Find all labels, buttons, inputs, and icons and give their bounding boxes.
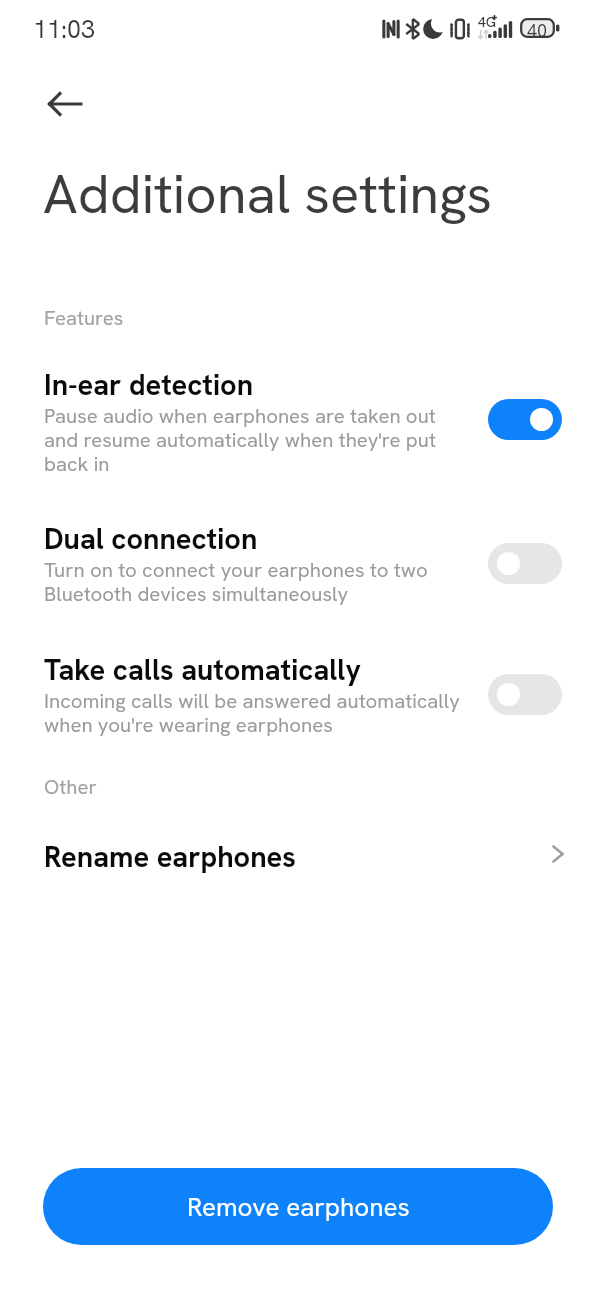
- staticText: In-ear detection: [44, 366, 254, 404]
- staticText: 40: [527, 19, 548, 42]
- button[interactable]: Switch off: [488, 543, 562, 584]
- staticText: 4G: [478, 13, 497, 31]
- staticText: 11:03: [33, 13, 96, 46]
- staticText: Pause audio when earphones are taken out…: [44, 403, 464, 477]
- button[interactable]: Switch off: [488, 674, 562, 715]
- button[interactable]: Switch on: [488, 399, 562, 440]
- button[interactable]: Rename earphones: [0, 838, 596, 878]
- staticText: Additional settings: [43, 158, 493, 229]
- button[interactable]: In-ear detection: [0, 366, 596, 440]
- button[interactable]: Remove earphones: [43, 1168, 553, 1245]
- staticText: Rename earphones: [44, 838, 296, 876]
- staticText: Turn on to connect your earphones to two…: [44, 557, 464, 607]
- staticText: Take calls automatically: [44, 651, 361, 689]
- staticText: Features: [44, 305, 124, 332]
- staticText: Other: [44, 774, 97, 801]
- button[interactable]: Back: [32, 71, 98, 137]
- button[interactable]: Dual connection: [0, 520, 596, 570]
- staticText: Dual connection: [44, 520, 258, 558]
- staticText: Remove earphones: [187, 1190, 410, 1224]
- button[interactable]: Take calls automatically: [0, 651, 596, 701]
- staticText: Incoming calls will be answered automati…: [44, 688, 464, 738]
